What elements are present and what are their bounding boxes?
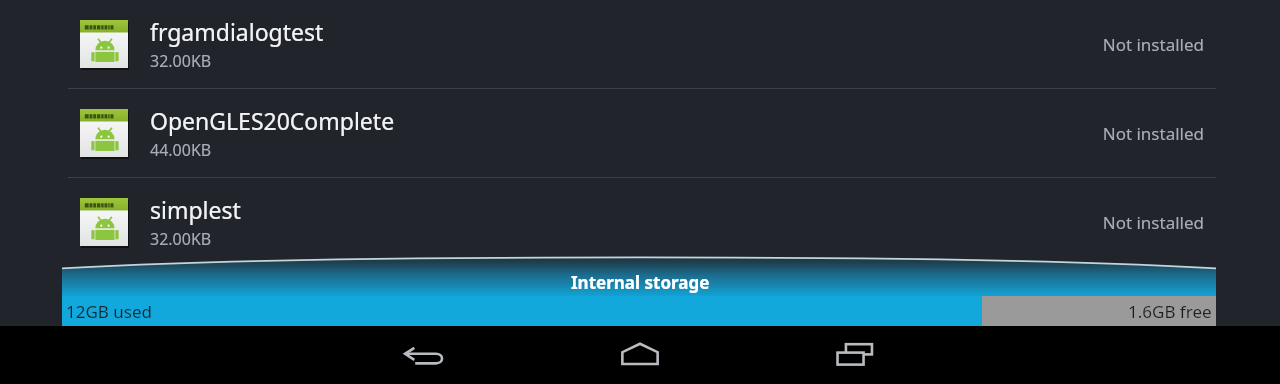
- staticText: 32.00KB: [150, 50, 212, 72]
- button[interactable]: frgamdialogtest: [0, 0, 1280, 88]
- button[interactable]: OpenGLES20Complete: [0, 89, 1280, 177]
- button[interactable]: Home: [532, 326, 748, 384]
- staticText: Not installed: [1102, 33, 1204, 56]
- staticText: Not installed: [1102, 122, 1204, 145]
- staticText: 44.00KB: [150, 139, 212, 161]
- staticText: frgamdialogtest: [150, 16, 324, 47]
- staticText: 12GB used: [66, 300, 152, 323]
- staticText: 32.00KB: [150, 228, 212, 250]
- staticText: simplest: [150, 194, 241, 225]
- button[interactable]: 12GB used: [62, 296, 1216, 326]
- staticText: 1.6GB free: [1128, 300, 1212, 323]
- staticText: OpenGLES20Complete: [150, 105, 395, 136]
- staticText: Not installed: [1102, 211, 1204, 234]
- button[interactable]: simplest: [0, 178, 1280, 266]
- button[interactable]: Back: [316, 326, 532, 384]
- staticText: Internal storage: [571, 271, 710, 294]
- button[interactable]: Recent apps: [748, 326, 964, 384]
